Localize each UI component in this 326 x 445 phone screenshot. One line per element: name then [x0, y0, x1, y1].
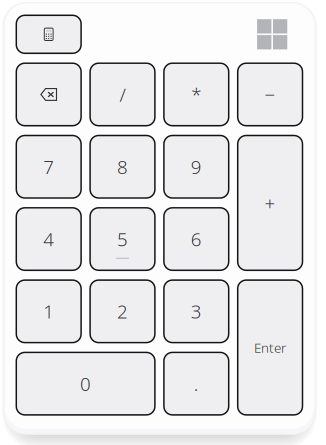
button[interactable] [16, 208, 81, 270]
button[interactable]: Divide [90, 63, 155, 126]
staticText: Enter [254, 339, 286, 356]
button[interactable] [164, 280, 229, 343]
button[interactable] [90, 208, 155, 270]
staticText: 3 [191, 299, 202, 324]
button[interactable]: Plus [238, 135, 302, 270]
staticText: / [119, 82, 125, 107]
staticText: 0 [80, 371, 91, 396]
staticText: 9 [191, 154, 202, 179]
button[interactable] [90, 135, 155, 198]
staticText: 6 [191, 227, 202, 251]
staticText: * [191, 82, 201, 107]
staticText: − [265, 82, 276, 107]
staticText: + [265, 190, 276, 215]
button[interactable] [164, 208, 229, 270]
button[interactable] [164, 352, 229, 415]
button[interactable]: Backspace [16, 63, 81, 126]
staticText: 5 [117, 227, 128, 251]
button[interactable] [16, 352, 155, 415]
staticText: 7 [43, 154, 54, 179]
button[interactable] [164, 135, 229, 198]
button[interactable] [16, 135, 81, 198]
staticText: . [194, 371, 199, 396]
staticText: 2 [117, 299, 128, 324]
staticText: 8 [117, 154, 128, 179]
button[interactable]: Multiply [164, 63, 229, 126]
button[interactable] [238, 280, 302, 415]
button[interactable]: Minus [238, 63, 302, 126]
button[interactable] [90, 280, 155, 343]
button[interactable]: Calculator [16, 15, 81, 53]
staticText: 1 [43, 299, 54, 324]
staticText: 4 [43, 227, 54, 251]
button[interactable] [16, 280, 81, 343]
